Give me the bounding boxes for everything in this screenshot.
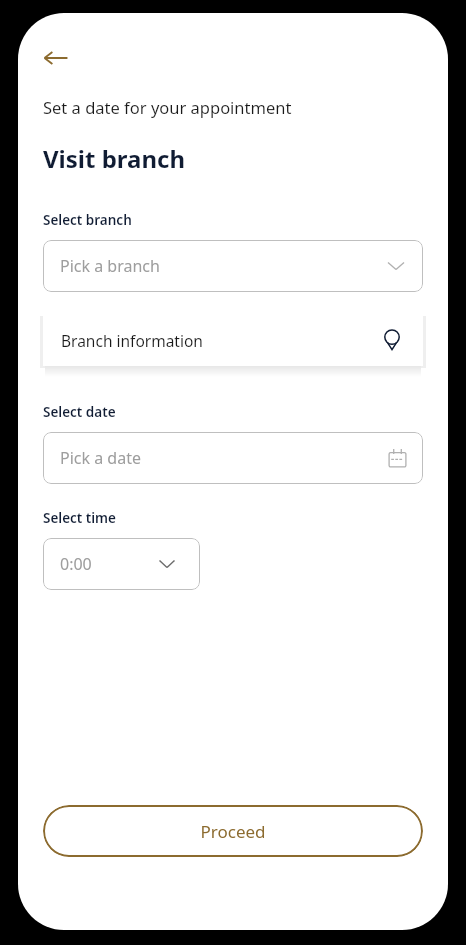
staticText: Branch information — [61, 330, 203, 351]
staticText: Pick a date — [60, 447, 141, 469]
button[interactable]: 0:00 — [43, 538, 200, 590]
other: Branch location — [379, 327, 405, 353]
button[interactable]: Proceed — [43, 805, 423, 857]
staticText: Select time — [43, 509, 116, 527]
staticText: Select date — [43, 403, 116, 421]
staticText: Pick a branch — [60, 255, 160, 277]
staticText: Select branch — [43, 211, 132, 229]
button[interactable]: Pick a branch — [43, 240, 423, 292]
staticText: Set a date for your appointment — [43, 96, 292, 118]
button[interactable]: Branch information — [43, 314, 423, 366]
button[interactable]: Pick a date — [43, 432, 423, 484]
staticText: Visit branch — [43, 142, 186, 175]
button[interactable]: Back — [34, 36, 78, 80]
staticText: 0:00 — [60, 553, 92, 575]
staticText: Proceed — [200, 820, 266, 843]
